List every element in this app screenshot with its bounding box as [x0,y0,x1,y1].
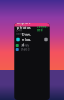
staticText: Shared [21,48,30,51]
staticText: Import photos [17,19,31,30]
staticText: Connected [37,25,48,32]
staticText: iCloud Photos · 248 items [16,21,28,36]
staticText: Download [22,31,31,47]
staticText: Library [21,44,29,47]
